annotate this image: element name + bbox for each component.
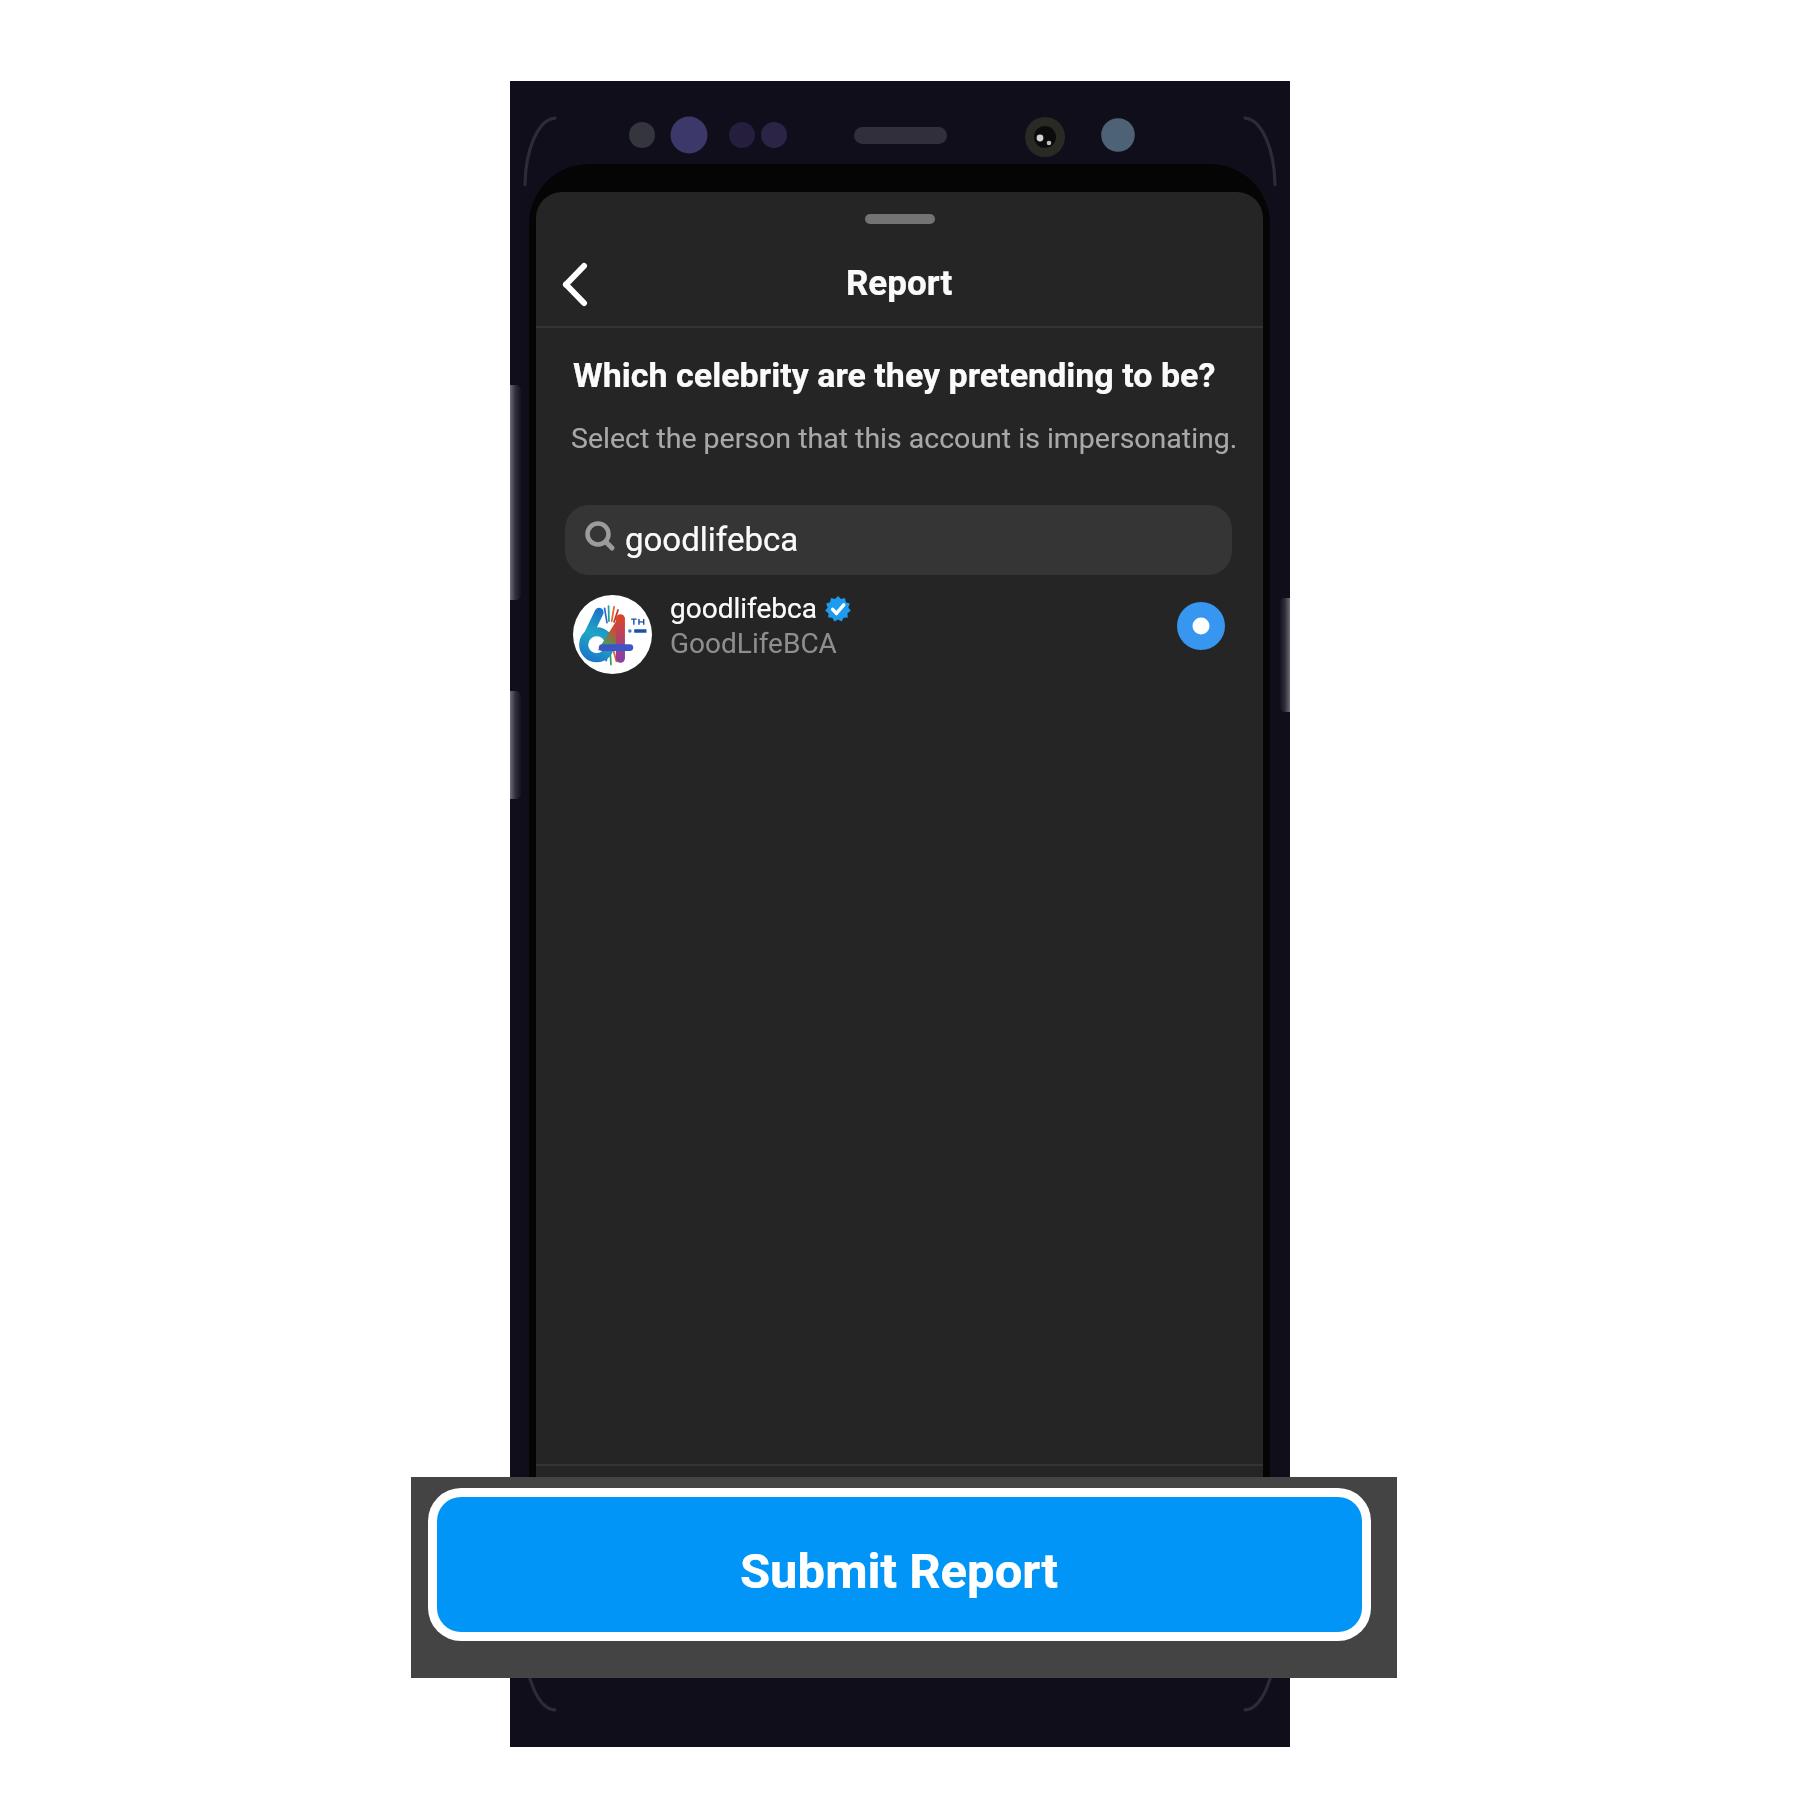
staticText: Select the person that this account is i… xyxy=(571,422,1238,455)
button[interactable]: Submit Report xyxy=(437,1497,1362,1632)
staticText: Submit Report xyxy=(740,1543,1059,1600)
staticText: goodlifebca xyxy=(670,592,817,625)
button[interactable]: goodlifebca xyxy=(536,576,1263,676)
staticText: Which celebrity are they pretending to b… xyxy=(573,355,1216,395)
button[interactable]: goodlifebca xyxy=(565,505,1232,575)
staticText: GoodLifeBCA xyxy=(670,627,837,660)
button[interactable]: Select goodlifebca xyxy=(1169,594,1233,658)
staticText: goodlifebca xyxy=(625,520,799,559)
button[interactable]: Back xyxy=(544,253,606,315)
staticText: Report xyxy=(846,263,953,304)
